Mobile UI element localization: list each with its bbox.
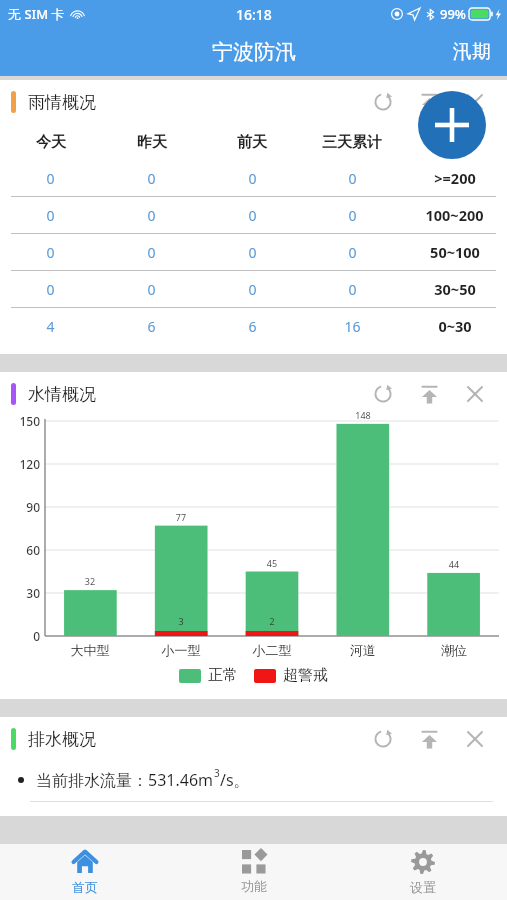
staticText: 99%: [440, 5, 466, 23]
staticText: 汛期: [453, 40, 491, 64]
staticText: 前天: [237, 133, 267, 152]
staticText: 雨情概况: [28, 92, 96, 113]
staticText: 小一型: [149, 642, 213, 658]
staticText: 90: [4, 499, 40, 515]
staticText: 44: [434, 558, 474, 570]
staticText: 排水概况: [28, 729, 96, 750]
staticText: 0: [348, 169, 357, 188]
staticText: 2: [252, 615, 292, 627]
staticText: 0~30: [438, 316, 472, 336]
staticText: 超警戒: [283, 666, 328, 685]
staticText: 30: [4, 585, 40, 601]
staticText: 小二型: [240, 642, 304, 658]
staticText: 0: [348, 243, 357, 262]
button[interactable]: Close: [457, 721, 493, 757]
staticText: 0: [46, 169, 55, 188]
staticText: /s。: [220, 769, 250, 791]
button[interactable]: Add: [418, 91, 486, 159]
staticText: 大中型: [58, 642, 122, 658]
button[interactable]: Refresh: [365, 84, 401, 120]
staticText: 3: [214, 766, 220, 780]
button[interactable]: 0: [0, 160, 507, 196]
staticText: 77: [161, 511, 201, 523]
staticText: 150: [4, 413, 40, 429]
staticText: 0: [4, 628, 40, 644]
staticText: 功能: [241, 878, 267, 894]
button[interactable]: Close: [457, 84, 493, 120]
staticText: 45: [252, 557, 292, 569]
staticText: 0: [147, 243, 156, 262]
staticText: 首页: [72, 879, 98, 895]
staticText: 16:18: [236, 5, 272, 24]
button[interactable]: 功能: [169, 844, 338, 900]
button[interactable]: 0: [0, 234, 507, 270]
staticText: 0: [147, 206, 156, 225]
button[interactable]: 0: [0, 197, 507, 233]
staticText: 今天: [36, 133, 66, 152]
staticText: 水情概况: [28, 384, 96, 405]
button[interactable]: 首页: [0, 844, 169, 900]
button[interactable]: 4: [0, 308, 507, 344]
staticText: 148: [343, 409, 383, 421]
button[interactable]: 0: [0, 271, 507, 307]
staticText: 32: [70, 575, 110, 587]
button[interactable]: 汛期: [437, 28, 507, 76]
staticText: 潮位: [422, 642, 486, 658]
staticText: 0: [46, 206, 55, 225]
button[interactable]: Close: [457, 376, 493, 412]
staticText: 50~100: [430, 242, 480, 262]
staticText: 3: [161, 615, 201, 627]
staticText: 昨天: [137, 133, 167, 152]
staticText: 120: [4, 456, 40, 472]
staticText: 0: [248, 169, 257, 188]
staticText: 正常: [208, 666, 238, 685]
staticText: 设置: [410, 879, 436, 895]
staticText: 0: [46, 243, 55, 262]
staticText: 雨量: [440, 133, 470, 152]
staticText: >=200: [434, 168, 476, 188]
staticText: 0: [147, 280, 156, 299]
button[interactable]: Collapse: [411, 376, 447, 412]
staticText: 0: [248, 206, 257, 225]
staticText: 4: [46, 317, 55, 336]
staticText: 0: [248, 243, 257, 262]
staticText: 30~50: [434, 279, 476, 299]
staticText: 60: [4, 542, 40, 558]
button[interactable]: Refresh: [365, 376, 401, 412]
staticText: 无 SIM 卡: [8, 5, 65, 23]
button[interactable]: Collapse: [411, 721, 447, 757]
staticText: 0: [248, 280, 257, 299]
staticText: 0: [348, 280, 357, 299]
button[interactable]: Collapse: [411, 84, 447, 120]
staticText: 0: [46, 280, 55, 299]
staticText: 6: [147, 317, 156, 336]
staticText: 6: [248, 317, 257, 336]
staticText: 宁波防汛: [212, 39, 296, 65]
staticText: 当前排水流量：531.46m: [36, 769, 214, 791]
staticText: 16: [344, 317, 361, 336]
staticText: 三天累计: [322, 133, 382, 152]
button[interactable]: 设置: [338, 844, 507, 900]
button[interactable]: Refresh: [365, 721, 401, 757]
staticText: 0: [147, 169, 156, 188]
staticText: 100~200: [425, 205, 484, 225]
staticText: 0: [348, 206, 357, 225]
staticText: 河道: [331, 642, 395, 658]
